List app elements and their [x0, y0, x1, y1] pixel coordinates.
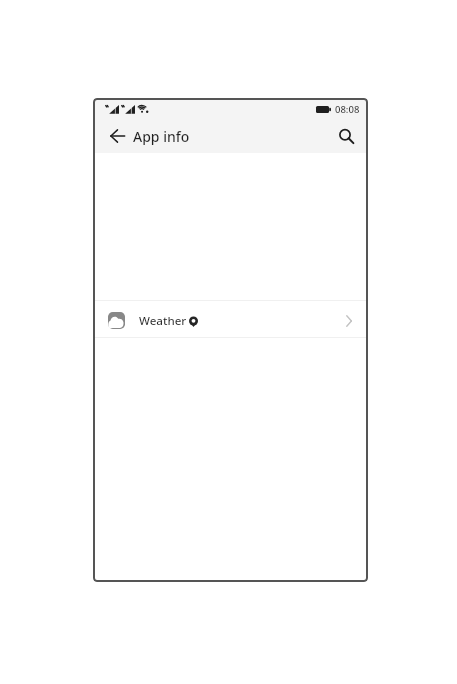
- button[interactable]: Back: [106, 125, 128, 147]
- staticText: Weather: [139, 313, 187, 329]
- button[interactable]: Weather: [93, 301, 368, 337]
- button[interactable]: Search: [335, 125, 357, 147]
- staticText: App info: [133, 127, 190, 146]
- staticText: 08:08: [335, 103, 360, 116]
